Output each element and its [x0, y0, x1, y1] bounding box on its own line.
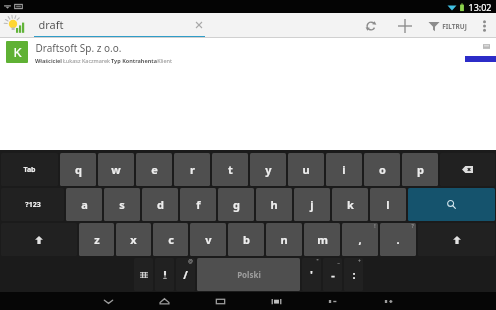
- button[interactable]: t: [212, 153, 248, 186]
- button[interactable]: FILTRUJ: [426, 16, 469, 36]
- button[interactable]: m: [304, 223, 340, 256]
- staticText: FILTRUJ: [442, 22, 467, 31]
- button[interactable]: p: [402, 153, 438, 186]
- button[interactable]: Tab: [1, 153, 58, 186]
- staticText: i: [342, 162, 346, 177]
- staticText: _: [337, 258, 340, 265]
- staticText: ": [316, 258, 319, 265]
- button[interactable]: h: [256, 188, 292, 221]
- staticText: r: [190, 162, 195, 177]
- button[interactable]: Backspace: [440, 153, 495, 186]
- staticText: a: [81, 197, 88, 212]
- staticText: c: [168, 232, 174, 247]
- button[interactable]: Volume down: [323, 292, 341, 310]
- button[interactable]: o: [364, 153, 400, 186]
- staticText: Polski: [237, 269, 261, 280]
- button[interactable]: z: [79, 223, 114, 256]
- staticText: ?: [411, 223, 414, 230]
- button[interactable]: More options: [474, 16, 494, 36]
- button[interactable]: i: [326, 153, 362, 186]
- button[interactable]: :: [344, 258, 363, 291]
- button[interactable]: Refresh: [359, 14, 383, 38]
- button[interactable]: Open details: [482, 42, 491, 51]
- staticText: j: [310, 197, 314, 212]
- button[interactable]: App logo: [2, 13, 27, 38]
- button[interactable]: Home: [155, 292, 173, 310]
- staticText: b: [243, 232, 250, 247]
- button[interactable]: e: [136, 153, 172, 186]
- button[interactable]: k: [332, 188, 368, 221]
- button[interactable]: K: [0, 38, 496, 68]
- button[interactable]: Shift: [418, 223, 495, 256]
- button[interactable]: Add: [393, 14, 417, 38]
- button[interactable]: g: [218, 188, 254, 221]
- button[interactable]: Polski: [197, 258, 300, 291]
- staticText: ': [310, 267, 313, 282]
- staticText: p: [417, 162, 424, 177]
- button[interactable]: q: [60, 153, 96, 186]
- button[interactable]: ': [302, 258, 321, 291]
- button[interactable]: f: [180, 188, 216, 221]
- button[interactable]: n: [266, 223, 302, 256]
- staticText: v: [205, 232, 212, 247]
- button[interactable]: Volume up: [379, 292, 397, 310]
- button[interactable]: Switch keyboard: [134, 258, 153, 291]
- button[interactable]: c: [153, 223, 188, 256]
- staticText: Łukasz Kaczmarek: [62, 57, 111, 64]
- button[interactable]: b: [228, 223, 264, 256]
- staticText: s: [119, 197, 125, 212]
- staticText: .: [396, 232, 400, 247]
- staticText: :: [352, 267, 356, 282]
- staticText: e: [151, 162, 158, 177]
- staticText: -: [331, 267, 335, 282]
- staticText: d: [157, 197, 164, 212]
- staticText: x: [130, 232, 137, 247]
- button[interactable]: Clear search: [192, 18, 205, 31]
- button[interactable]: x: [116, 223, 151, 256]
- button[interactable]: .: [380, 223, 416, 256]
- button[interactable]: ?123: [1, 188, 64, 221]
- button[interactable]: u: [288, 153, 324, 186]
- staticText: l: [386, 197, 390, 212]
- button[interactable]: Hide keyboard: [99, 292, 117, 310]
- staticText: draft: [38, 17, 64, 32]
- staticText: u: [302, 162, 310, 177]
- button[interactable]: v: [190, 223, 226, 256]
- staticText: o: [379, 162, 386, 177]
- button[interactable]: y: [250, 153, 286, 186]
- staticText: 13:02: [468, 1, 492, 13]
- staticText: K: [13, 43, 22, 61]
- staticText: q: [75, 162, 82, 177]
- button[interactable]: /: [176, 258, 195, 291]
- button[interactable]: j: [294, 188, 330, 221]
- button[interactable]: -: [323, 258, 342, 291]
- button[interactable]: Screenshot: [267, 292, 285, 310]
- staticText: +: [358, 258, 361, 265]
- button[interactable]: Shift: [1, 223, 77, 256]
- staticText: Draftsoft Sp. z o.o.: [35, 41, 122, 55]
- button[interactable]: Search: [408, 188, 495, 221]
- button[interactable]: ,: [342, 223, 378, 256]
- button[interactable]: d: [142, 188, 178, 221]
- staticText: Właściciel: [35, 57, 62, 64]
- button[interactable]: Recent apps: [211, 292, 229, 310]
- staticText: @: [188, 258, 193, 265]
- staticText: ,: [358, 232, 362, 247]
- button[interactable]: l: [370, 188, 406, 221]
- button[interactable]: r: [174, 153, 210, 186]
- staticText: ?123: [25, 200, 41, 210]
- staticText: Typ Kontrahenta: [111, 57, 157, 64]
- button[interactable]: a: [66, 188, 102, 221]
- staticText: h: [270, 197, 278, 212]
- staticText: n: [280, 232, 288, 247]
- button[interactable]: Voice input: [155, 258, 174, 291]
- button[interactable]: s: [104, 188, 140, 221]
- staticText: k: [347, 197, 354, 212]
- button[interactable]: draft: [34, 15, 205, 37]
- staticText: t: [228, 162, 233, 177]
- staticText: y: [265, 162, 272, 177]
- button[interactable]: w: [98, 153, 134, 186]
- staticText: g: [233, 197, 240, 212]
- staticText: z: [94, 232, 100, 247]
- staticText: !: [374, 223, 376, 230]
